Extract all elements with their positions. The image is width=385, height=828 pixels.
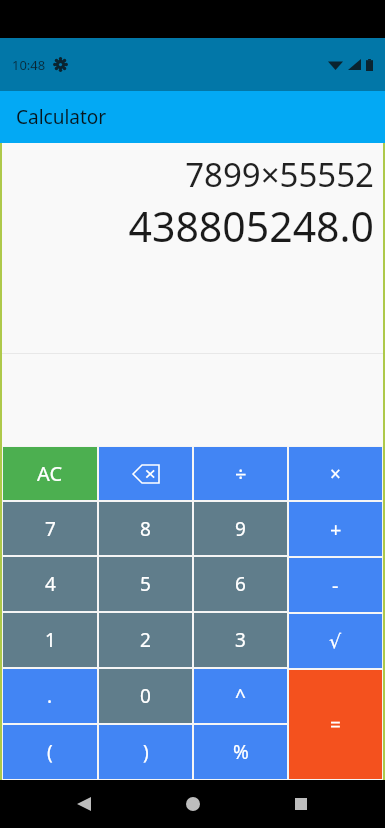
staticText: AC bbox=[37, 460, 63, 487]
button[interactable]: 4 bbox=[3, 557, 97, 611]
button[interactable]: 6 bbox=[194, 557, 287, 611]
button[interactable]: ^ bbox=[194, 669, 287, 723]
button[interactable]: Back bbox=[60, 780, 108, 828]
button[interactable]: 8 bbox=[99, 502, 192, 555]
button[interactable]: 9 bbox=[194, 502, 287, 555]
button[interactable]: Backspace bbox=[99, 447, 192, 500]
button[interactable]: × bbox=[289, 447, 382, 500]
button[interactable]: 5 bbox=[99, 557, 192, 611]
staticText: ÷ bbox=[235, 460, 247, 487]
button[interactable]: % bbox=[194, 725, 287, 779]
staticText: % bbox=[233, 739, 249, 765]
staticText: = bbox=[330, 712, 341, 738]
staticText: + bbox=[330, 516, 342, 543]
staticText: 3 bbox=[235, 627, 246, 653]
staticText: 7899×55552 bbox=[2, 152, 374, 197]
button[interactable]: + bbox=[289, 502, 382, 556]
staticText: 10:48 bbox=[12, 56, 46, 74]
staticText: 7 bbox=[45, 516, 56, 542]
button[interactable]: 1 bbox=[3, 613, 97, 667]
staticText: - bbox=[332, 572, 339, 599]
staticText: ) bbox=[143, 739, 149, 765]
button[interactable]: Home bbox=[169, 780, 217, 828]
staticText: ( bbox=[47, 739, 53, 765]
staticText: 5 bbox=[140, 571, 151, 597]
button[interactable]: 0 bbox=[99, 669, 192, 723]
button[interactable]: ÷ bbox=[194, 447, 287, 500]
staticText: 4 bbox=[45, 571, 56, 597]
staticText: 6 bbox=[235, 571, 246, 597]
staticText: ^ bbox=[235, 683, 246, 709]
staticText: × bbox=[330, 461, 341, 487]
button[interactable]: 2 bbox=[99, 613, 192, 667]
button[interactable]: √ bbox=[289, 614, 382, 668]
staticText: 2 bbox=[140, 627, 151, 653]
button[interactable]: - bbox=[289, 558, 382, 612]
staticText: 1 bbox=[45, 627, 56, 653]
button[interactable]: ( bbox=[3, 725, 97, 779]
staticText: 8 bbox=[140, 516, 151, 542]
button[interactable]: Calculator bbox=[0, 91, 385, 143]
button[interactable]: = bbox=[289, 670, 382, 779]
staticText: . bbox=[47, 683, 53, 709]
button[interactable]: 3 bbox=[194, 613, 287, 667]
staticText: Calculator bbox=[16, 104, 107, 130]
button[interactable]: Recent apps bbox=[277, 780, 325, 828]
staticText: 0 bbox=[140, 683, 151, 709]
button[interactable]: . bbox=[3, 669, 97, 723]
button[interactable]: 7899×55552 bbox=[2, 143, 383, 354]
button[interactable]: ) bbox=[99, 725, 192, 779]
button[interactable]: 7 bbox=[3, 502, 97, 555]
staticText: 9 bbox=[235, 516, 246, 542]
button[interactable]: AC bbox=[3, 447, 97, 500]
staticText: √ bbox=[329, 630, 342, 652]
staticText: 438805248.0 bbox=[2, 198, 374, 254]
